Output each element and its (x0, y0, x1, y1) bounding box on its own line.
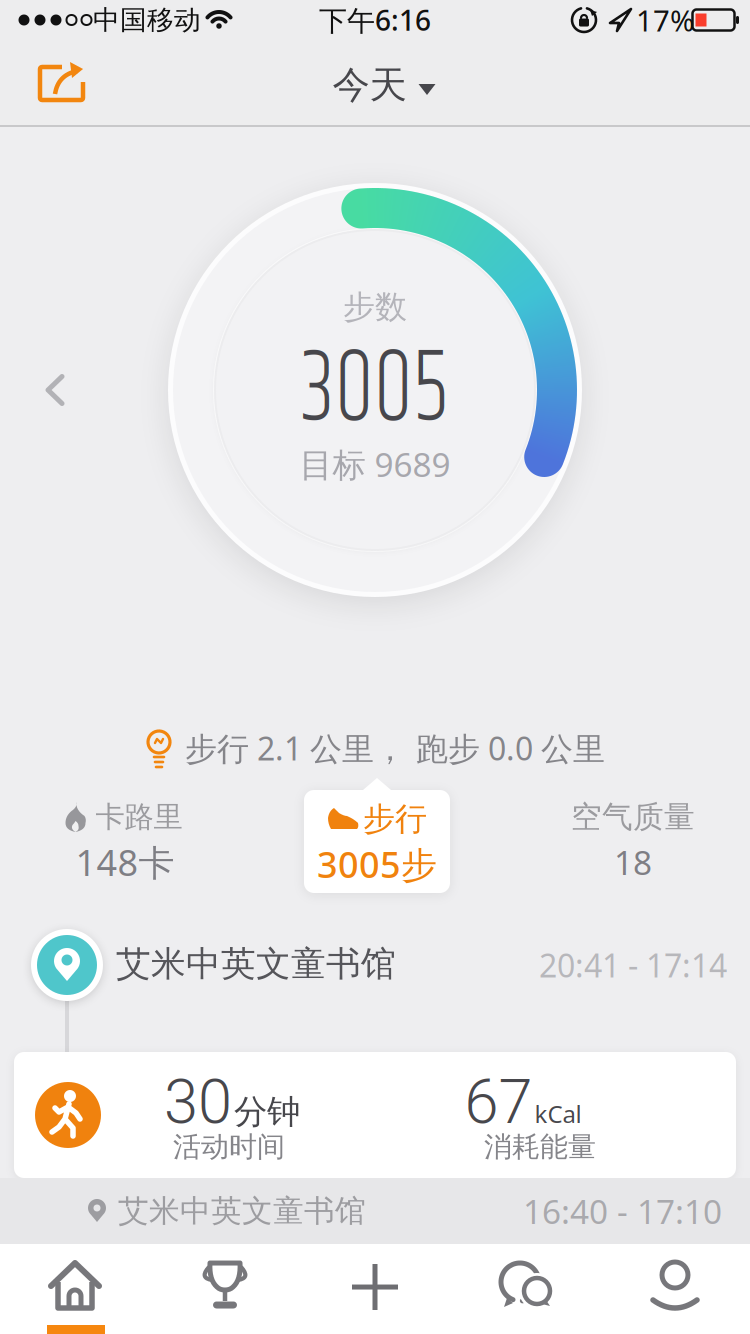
staticText: 步行 (363, 799, 427, 839)
staticText: 步数 (343, 287, 407, 327)
button[interactable]: 分享 (22, 49, 98, 125)
staticText: 艾米中英文童书馆 (116, 943, 396, 985)
button[interactable]: 排行榜 (150, 1242, 300, 1332)
staticText: 活动时间 (173, 1130, 285, 1164)
staticText: 下午6:16 (319, 1, 431, 39)
button[interactable]: 活动 30分钟 67kCal (14, 1052, 736, 1178)
staticText: 步行 2.1 公里， 跑步 0.0 公里 (185, 727, 605, 769)
button[interactable]: 选择日期 (332, 62, 435, 108)
staticText: 67 (464, 1066, 532, 1138)
staticText: 消耗能量 (484, 1130, 596, 1164)
button[interactable]: 添加 (300, 1242, 450, 1332)
button[interactable]: 前一天 (45, 374, 65, 405)
button[interactable]: 首页 (0, 1242, 150, 1332)
staticText: kCal (534, 1098, 581, 1130)
staticText: 3005步 (317, 840, 437, 888)
staticText: 今天 (332, 62, 406, 108)
staticText: 16:40 - 17:10 (523, 1189, 722, 1233)
staticText: 目标 9689 (299, 442, 450, 486)
staticText: 17% (636, 0, 694, 39)
staticText: 20:41 - 17:14 (539, 944, 727, 986)
button[interactable]: 消息 (450, 1242, 600, 1332)
staticText: 艾米中英文童书馆 (118, 1192, 366, 1230)
button[interactable]: 艾米中英文童书馆 (31, 929, 103, 1001)
staticText: 3005 (287, 310, 462, 469)
staticText: 148卡 (75, 838, 174, 886)
staticText: 空气质量 (571, 798, 695, 836)
staticText: 卡路里 (95, 799, 182, 835)
staticText: 18 (614, 840, 652, 884)
staticText: 30 (164, 1066, 232, 1138)
staticText: 分钟 (234, 1091, 300, 1132)
button[interactable]: 艾米中英文童书馆 16:40 - 17:10 (0, 1178, 750, 1244)
button[interactable]: 步行 3005步 (304, 778, 450, 893)
button[interactable]: 我的 (600, 1242, 750, 1332)
staticText: 中国移动 (93, 4, 201, 36)
